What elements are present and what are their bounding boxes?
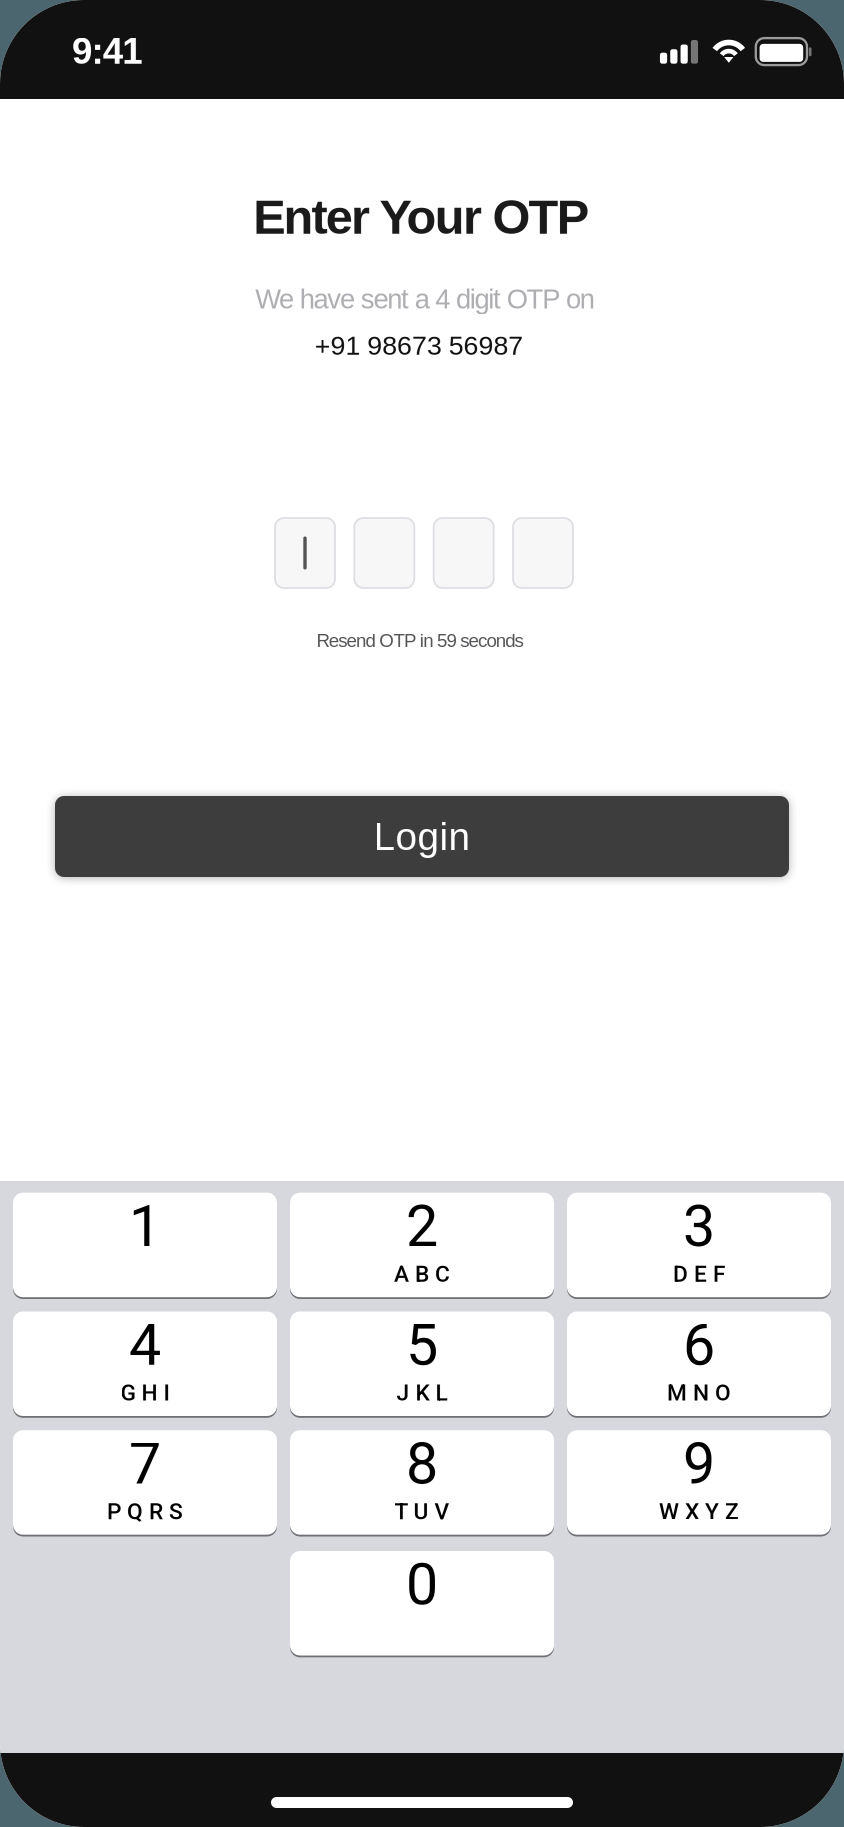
staticText: 0 (406, 1551, 438, 1618)
staticText: G H I (120, 1379, 169, 1406)
staticText: Enter Your OTP (253, 190, 589, 244)
button[interactable]: 2 (290, 1193, 554, 1297)
staticText: A B C (394, 1261, 450, 1287)
button[interactable]: 0 (290, 1551, 554, 1655)
staticText: J K L (396, 1379, 447, 1406)
staticText: 4 (129, 1312, 161, 1379)
button[interactable]: 7 (13, 1430, 277, 1535)
staticText: 7 (129, 1430, 161, 1498)
button[interactable]: Login (55, 796, 789, 877)
button[interactable]: 8 (290, 1430, 554, 1535)
button[interactable]: 3 (567, 1193, 831, 1297)
button[interactable]: 5 (290, 1311, 554, 1416)
staticText: P Q R S (107, 1498, 183, 1525)
staticText: 1 (129, 1193, 161, 1260)
staticText: 5 (406, 1312, 438, 1379)
button[interactable]: 6 (567, 1311, 831, 1416)
staticText: 8 (406, 1430, 438, 1498)
staticText: Resend OTP in 59 seconds (316, 630, 524, 651)
button[interactable]: 1 (13, 1193, 277, 1297)
staticText: 9 (683, 1430, 715, 1498)
staticText: W X Y Z (659, 1498, 739, 1525)
button[interactable]: Resend OTP in 59 seconds (0, 626, 842, 654)
staticText: Login (373, 815, 470, 858)
staticText: 2 (406, 1193, 438, 1260)
staticText: 6 (683, 1312, 715, 1379)
staticText: D E F (673, 1261, 725, 1287)
staticText: 9:41 (72, 30, 142, 71)
button[interactable]: 9 (567, 1430, 831, 1535)
staticText: T U V (394, 1498, 449, 1525)
button[interactable]: 4 (13, 1311, 277, 1416)
staticText: +91 98673 56987 (315, 331, 523, 360)
staticText: We have sent a 4 digit OTP on (255, 284, 595, 314)
staticText: M N O (667, 1379, 731, 1406)
staticText: 3 (683, 1193, 715, 1260)
